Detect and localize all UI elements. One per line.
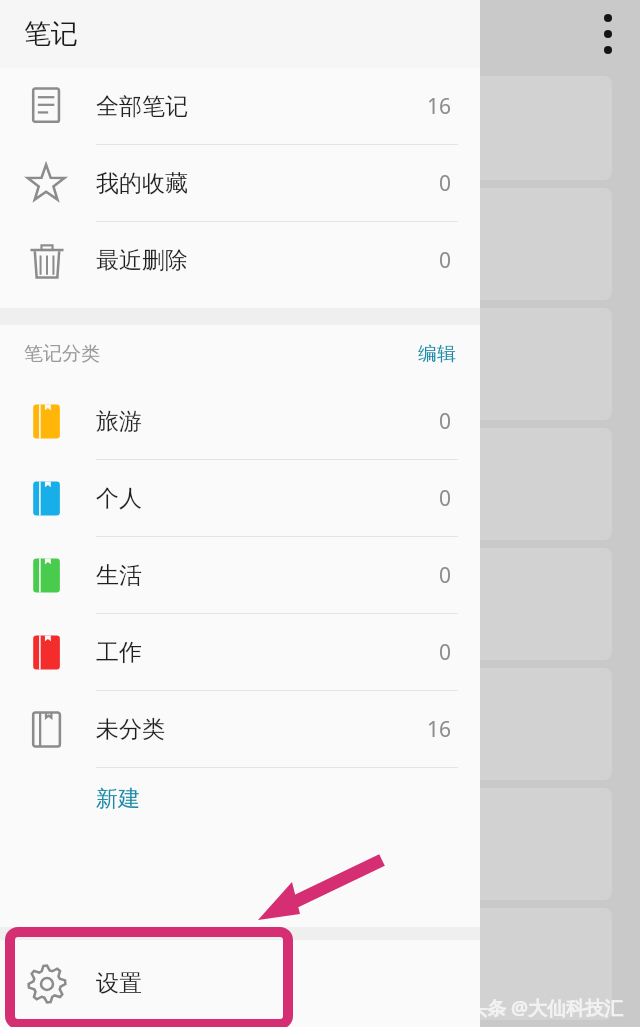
staticText: 全部笔记 xyxy=(96,92,188,121)
staticText: 个人 xyxy=(96,484,142,513)
staticText: 0 xyxy=(439,638,452,667)
other: Settings xyxy=(24,961,70,1007)
staticText: 未分类 xyxy=(96,715,165,744)
staticText: 头条 @大仙科技汇 xyxy=(468,995,624,1021)
button[interactable]: 旅游 xyxy=(0,383,480,460)
staticText: 设置 xyxy=(96,969,142,998)
button[interactable]: 工作 xyxy=(0,614,480,691)
button[interactable]: Favorites xyxy=(0,145,480,222)
staticText: 编辑 xyxy=(418,342,456,366)
staticText: 0 xyxy=(439,407,452,436)
staticText: 最近删除 xyxy=(96,246,188,275)
staticText: 0 xyxy=(439,484,452,513)
staticText: 新建 xyxy=(96,785,140,813)
button[interactable]: Recently deleted xyxy=(0,222,480,299)
staticText: 生活 xyxy=(96,561,142,590)
button[interactable]: 编辑 xyxy=(394,334,480,374)
button[interactable]: Settings xyxy=(0,940,480,1027)
button[interactable]: 生活 xyxy=(0,537,480,614)
staticText: 笔记分类 xyxy=(24,342,100,366)
button[interactable]: 未分类 xyxy=(0,691,480,768)
button[interactable]: 新建 xyxy=(0,768,480,830)
other: Recently deleted xyxy=(24,238,70,284)
staticText: 16 xyxy=(427,715,452,744)
staticText: 16 xyxy=(427,92,452,121)
staticText: 0 xyxy=(439,561,452,590)
other: More options xyxy=(604,14,612,54)
button[interactable]: 个人 xyxy=(0,460,480,537)
staticText: 0 xyxy=(439,169,452,198)
staticText: 笔记 xyxy=(24,17,78,51)
staticText: 工作 xyxy=(96,638,142,667)
other: All notes xyxy=(24,84,70,130)
other: Favorites xyxy=(24,161,70,207)
staticText: 0 xyxy=(439,246,452,275)
staticText: 旅游 xyxy=(96,407,142,436)
staticText: 我的收藏 xyxy=(96,169,188,198)
button[interactable]: All notes xyxy=(0,68,480,145)
